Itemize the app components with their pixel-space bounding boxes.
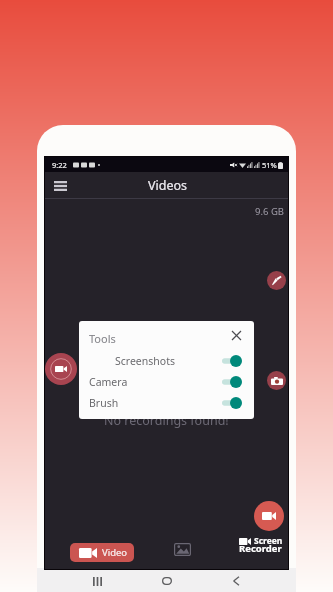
button[interactable]: Screenshots [79,350,254,371]
button[interactable]: Back [225,570,247,592]
staticText: 51% [262,160,277,170]
staticText: Screenshots [115,354,175,368]
button[interactable]: Video [70,543,134,562]
button[interactable]: Home [156,570,178,592]
button[interactable]: Recents [86,570,108,592]
button[interactable]: Open navigation menu [50,176,70,196]
button[interactable]: Close [229,328,244,343]
staticText: No recordings found! [104,412,229,429]
button[interactable]: Camera [79,371,254,392]
staticText: Brush [89,396,119,410]
staticText: Camera [89,375,128,389]
staticText: Tools [89,331,116,346]
staticText: Videos [148,177,188,194]
staticText: 9:22 [52,160,67,170]
button[interactable]: New recording [254,501,284,531]
staticText: Screen [254,535,283,547]
button[interactable]: Camera tool [267,371,286,390]
staticText: 9.6 GB [255,205,284,218]
button[interactable]: Brush tool [267,271,286,290]
button[interactable]: Start recording [45,353,77,385]
button[interactable]: Brush [79,392,254,413]
button[interactable]: Images [171,540,193,558]
staticText: Video [102,546,128,559]
staticText: Recorder [239,542,282,555]
